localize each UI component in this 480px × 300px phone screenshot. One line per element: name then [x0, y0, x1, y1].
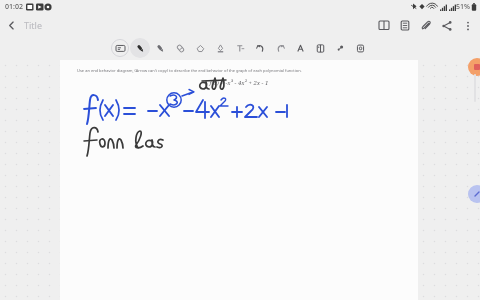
button[interactable]: Font: [290, 38, 310, 58]
staticText: 51%: [456, 2, 470, 12]
button[interactable]: Lock: [350, 38, 370, 58]
button[interactable]: Notes: [394, 15, 415, 36]
button[interactable]: Text: [230, 38, 250, 58]
staticText: Title: [24, 19, 42, 31]
button[interactable]: Page view: [373, 15, 394, 36]
staticText: Use an end behavior diagram, (Arrow can'…: [77, 68, 408, 73]
button[interactable]: Back: [0, 14, 22, 36]
staticText: 01:02: [5, 2, 23, 12]
button[interactable]: Attach: [415, 15, 436, 36]
button[interactable]: Undo: [250, 38, 270, 58]
button[interactable]: Shapes: [190, 38, 210, 58]
button[interactable]: Pencil: [150, 38, 170, 58]
button[interactable]: Eraser: [170, 38, 190, 58]
staticText: f(x) = −x³ − 4x² + 2x − 1: [60, 79, 418, 87]
button[interactable]: Edit: [468, 185, 480, 203]
button[interactable]: Redo: [270, 38, 290, 58]
button[interactable]: Select: [110, 38, 130, 58]
button[interactable]: Bookmark: [468, 58, 480, 76]
button[interactable]: More options: [457, 15, 478, 36]
button[interactable]: Insert image: [310, 38, 330, 58]
button[interactable]: Share: [436, 15, 457, 36]
button[interactable]: Lasso: [330, 38, 350, 58]
button[interactable]: Pen: [130, 38, 150, 58]
button[interactable]: Highlighter: [210, 38, 230, 58]
